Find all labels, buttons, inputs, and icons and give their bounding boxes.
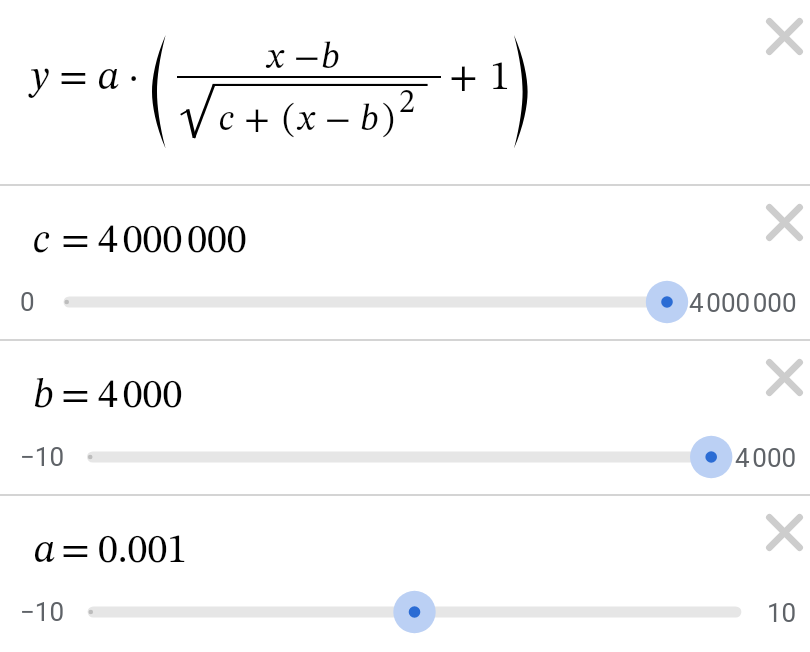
staticText: ( xyxy=(282,103,295,139)
button[interactable]: 𝑦 xyxy=(0,0,810,184)
staticText: −10 xyxy=(20,442,65,472)
staticText: 𝑥 xyxy=(265,41,286,77)
staticText: = xyxy=(61,377,90,417)
staticText: − xyxy=(325,103,351,139)
staticText: = xyxy=(61,532,90,572)
staticText: 𝑎 xyxy=(33,532,56,572)
staticText: = xyxy=(61,222,90,262)
staticText: ) xyxy=(382,103,395,139)
staticText: 𝑏 xyxy=(360,103,379,139)
staticText: 𝑐 xyxy=(219,103,234,139)
staticText: 𝑥 xyxy=(296,103,317,139)
staticText: 4 000 xyxy=(735,443,797,473)
staticText: 0.001 xyxy=(98,532,187,572)
staticText: 𝑐 xyxy=(33,222,50,262)
staticText: 2 xyxy=(399,88,415,120)
staticText: 4 000 000 xyxy=(689,288,797,318)
staticText: 4 000 000 xyxy=(98,222,247,262)
staticText: + xyxy=(244,103,270,139)
button[interactable]: −10 xyxy=(0,589,810,635)
staticText: 𝑎 xyxy=(97,59,120,99)
staticText: 0 xyxy=(20,287,35,317)
staticText: 𝑏 xyxy=(321,41,340,77)
button[interactable]: 𝑐 xyxy=(0,186,810,339)
staticText: 𝑦 xyxy=(29,59,50,99)
button[interactable]: −10 xyxy=(0,434,810,480)
button[interactable]: 𝑏 xyxy=(0,341,810,494)
staticText: = xyxy=(59,59,88,99)
button[interactable]: Remove xyxy=(753,5,810,67)
staticText: −10 xyxy=(20,597,65,627)
staticText: 4 000 xyxy=(98,377,183,417)
staticText: 10 xyxy=(767,598,797,628)
button[interactable]: Remove xyxy=(753,191,810,253)
staticText: 1 xyxy=(490,59,510,99)
staticText: + xyxy=(449,59,478,99)
button[interactable]: Remove xyxy=(753,501,810,563)
button[interactable]: Remove xyxy=(753,346,810,408)
button[interactable]: 𝑎 xyxy=(0,496,810,652)
staticText: − xyxy=(294,41,320,77)
button[interactable]: 0 xyxy=(0,279,810,325)
staticText: · xyxy=(128,59,140,99)
staticText: 𝑏 xyxy=(33,377,54,417)
